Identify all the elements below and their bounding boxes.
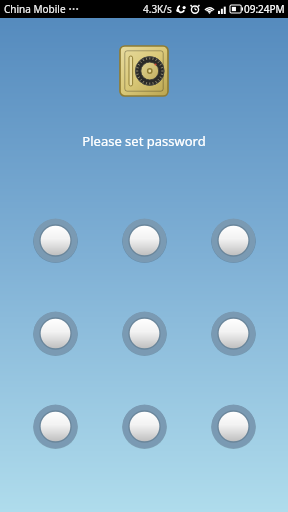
staticText: Please set password bbox=[82, 132, 206, 150]
button[interactable]: Pattern dot 7 bbox=[33, 404, 78, 449]
staticText: China Mobile bbox=[4, 2, 66, 16]
button[interactable]: Pattern dot 3 bbox=[211, 218, 256, 263]
button[interactable]: Pattern dot 4 bbox=[33, 311, 78, 356]
other: App lock bbox=[120, 46, 168, 96]
button[interactable]: Pattern dot 1 bbox=[33, 218, 78, 263]
staticText: 09:24PM bbox=[244, 2, 285, 16]
button[interactable]: Pattern dot 8 bbox=[122, 404, 167, 449]
button[interactable]: Pattern dot 9 bbox=[211, 404, 256, 449]
staticText: 4.3K/s bbox=[143, 2, 172, 16]
button[interactable]: Pattern dot 2 bbox=[122, 218, 167, 263]
button[interactable]: Pattern dot 5 bbox=[122, 311, 167, 356]
button[interactable]: Pattern dot 6 bbox=[211, 311, 256, 356]
